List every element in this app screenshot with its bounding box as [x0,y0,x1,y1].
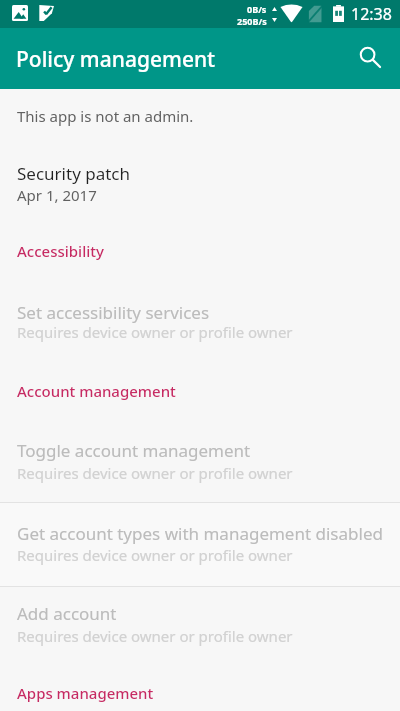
button[interactable]: Security patch [0,155,400,213]
button[interactable]: Set accessibility services [0,295,400,353]
button[interactable]: Get account types with management disabl… [0,503,400,586]
button[interactable]: Add account [0,597,400,657]
staticText: Set accessibility services [17,301,210,324]
staticText: Apr 1, 2017 [17,185,97,205]
staticText: Add account [17,602,117,625]
staticText: Get account types with management disabl… [17,522,383,545]
staticText: Accessibility [17,241,104,261]
staticText: Toggle account management [17,439,251,462]
staticText: 250B/s [237,15,267,27]
button[interactable]: Toggle account management [0,433,400,495]
staticText: This app is not an admin. [17,106,194,126]
staticText: 12:38 [351,3,392,25]
staticText: Apps management [17,683,154,703]
staticText: Policy management [16,45,216,74]
staticText: Requires device owner or profile owner [17,322,293,342]
staticText: Requires device owner or profile owner [17,463,293,483]
staticText: Security patch [17,162,131,185]
button[interactable]: Search [348,35,392,79]
staticText: 0B/s [247,3,267,15]
staticText: Requires device owner or profile owner [17,545,293,565]
staticText: Account management [17,381,176,401]
staticText: Requires device owner or profile owner [17,626,293,646]
